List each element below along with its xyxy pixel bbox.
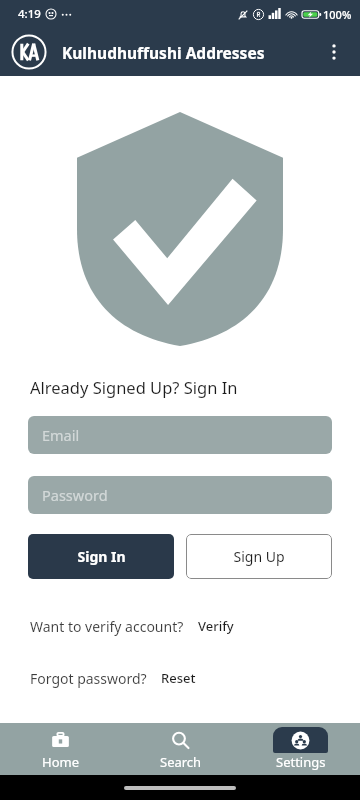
button[interactable]: App logo (10, 33, 48, 71)
button[interactable]: Sign In (28, 534, 174, 579)
button[interactable]: More options (314, 32, 354, 72)
staticText: Reset (161, 669, 196, 687)
staticText: Sign In (77, 547, 126, 566)
staticText: Search (160, 753, 202, 771)
button[interactable]: Settings (240, 723, 360, 775)
other: Home (51, 731, 70, 750)
button[interactable]: Email (28, 416, 332, 454)
staticText: Want to verify account? (30, 617, 184, 636)
staticText: Forgot password? (30, 669, 147, 688)
staticText: Email (42, 425, 80, 445)
button[interactable]: Search (120, 723, 240, 775)
staticText: 100% (323, 7, 352, 22)
other: Search (171, 731, 190, 750)
staticText: Home (42, 753, 79, 771)
staticText: 4:19 (18, 6, 41, 22)
staticText: Kulhudhuffushi Addresses (62, 42, 265, 63)
staticText: Password (42, 485, 108, 505)
staticText: Verify (198, 617, 234, 635)
button[interactable]: Verify (196, 615, 236, 637)
button[interactable]: Home (0, 723, 120, 775)
button[interactable]: Reset (159, 667, 198, 689)
button[interactable]: Password (28, 476, 332, 514)
staticText: Already Signed Up? Sign In (30, 376, 238, 398)
other: Settings (291, 731, 310, 750)
staticText: Settings (276, 753, 326, 771)
staticText: Sign Up (233, 547, 285, 566)
button[interactable]: Sign Up (186, 534, 332, 579)
